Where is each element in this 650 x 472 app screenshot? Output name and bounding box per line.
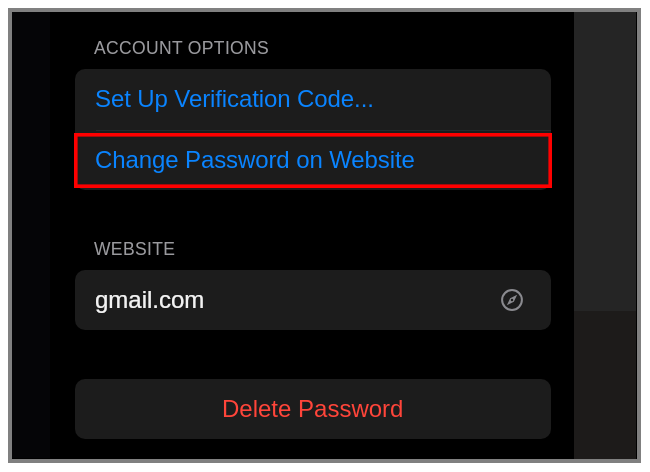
staticText: Delete Password [222, 395, 404, 422]
staticText: WEBSITE [94, 239, 176, 259]
button[interactable]: Open website in Safari [499, 287, 525, 313]
staticText: Set Up Verification Code... [95, 85, 374, 112]
staticText: Change Password on Website [95, 146, 415, 173]
staticText: ACCOUNT OPTIONS [94, 38, 270, 58]
staticText: gmail.com [95, 286, 205, 313]
button[interactable]: Change Password on Website [75, 131, 551, 190]
button[interactable]: gmail.com [75, 270, 551, 330]
button[interactable]: Delete Password [75, 379, 551, 439]
button[interactable]: Set Up Verification Code... [75, 69, 551, 130]
